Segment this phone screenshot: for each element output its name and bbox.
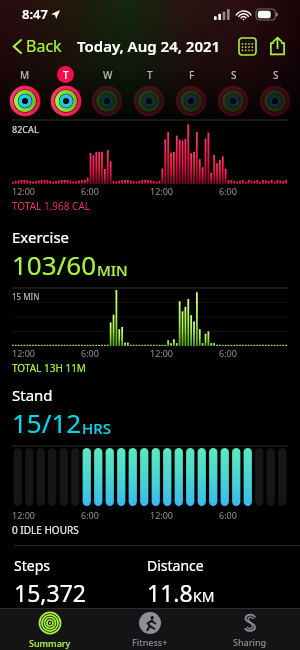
staticText: 12:00 [12, 509, 81, 521]
staticText: 12:00 [150, 347, 219, 359]
staticText: Exercise [12, 227, 70, 247]
staticText: 6:00 [81, 185, 150, 197]
staticText: HRS [82, 418, 111, 438]
staticText: 12:00 [150, 185, 219, 197]
staticText: 12:00 [12, 185, 81, 197]
button[interactable]: S [254, 66, 296, 117]
staticText: KM [193, 587, 215, 606]
staticText: 103/60 [12, 247, 97, 282]
staticText: 15,372 [14, 577, 86, 608]
staticText: W [103, 68, 113, 82]
button[interactable]: M [4, 66, 45, 117]
staticText: Sharing [233, 636, 267, 648]
staticText: S [273, 68, 279, 82]
button[interactable]: Calendar [234, 33, 260, 59]
staticText: S [231, 68, 237, 82]
button[interactable]: T [45, 66, 86, 117]
button[interactable]: W [86, 66, 128, 117]
button[interactable]: Back [10, 31, 64, 61]
staticText: 6:00 [219, 185, 288, 197]
staticText: 6:00 [81, 509, 150, 521]
staticText: 12:00 [12, 347, 81, 359]
staticText: 15/12 [12, 405, 82, 440]
staticText: MIN [97, 260, 128, 280]
staticText: F [189, 68, 195, 82]
button[interactable]: Summary [0, 609, 100, 650]
staticText: 0 IDLE HOURS [12, 523, 79, 537]
staticText: T [63, 68, 69, 82]
button[interactable]: T [128, 66, 170, 117]
staticText: 6:00 [219, 509, 288, 521]
button[interactable]: Share [264, 33, 290, 59]
staticText: T [147, 68, 153, 82]
staticText: M [20, 68, 30, 82]
staticText: Back [26, 35, 62, 57]
staticText: 6:00 [81, 347, 150, 359]
staticText: Distance [147, 556, 204, 575]
staticText: 15 MIN [12, 291, 40, 302]
button[interactable]: Sharing [200, 609, 300, 650]
staticText: Today, Aug 24, 2021 [77, 36, 221, 56]
staticText: TOTAL 13H 11M [12, 361, 86, 375]
staticText: 8:47 [22, 5, 48, 23]
staticText: 11.8 [147, 577, 193, 608]
button[interactable]: F [170, 66, 212, 117]
staticText: Stand [12, 385, 53, 405]
staticText: Fitness+ [132, 636, 168, 648]
staticText: 82CAL [12, 123, 39, 135]
staticText: 6:00 [219, 347, 288, 359]
button[interactable]: S [212, 66, 254, 117]
staticText: Summary [29, 637, 71, 649]
staticText: Steps [14, 556, 50, 575]
staticText: 12:00 [150, 509, 219, 521]
staticText: TOTAL 1,968 CAL [12, 199, 91, 213]
button[interactable]: Fitness+ [100, 609, 200, 650]
